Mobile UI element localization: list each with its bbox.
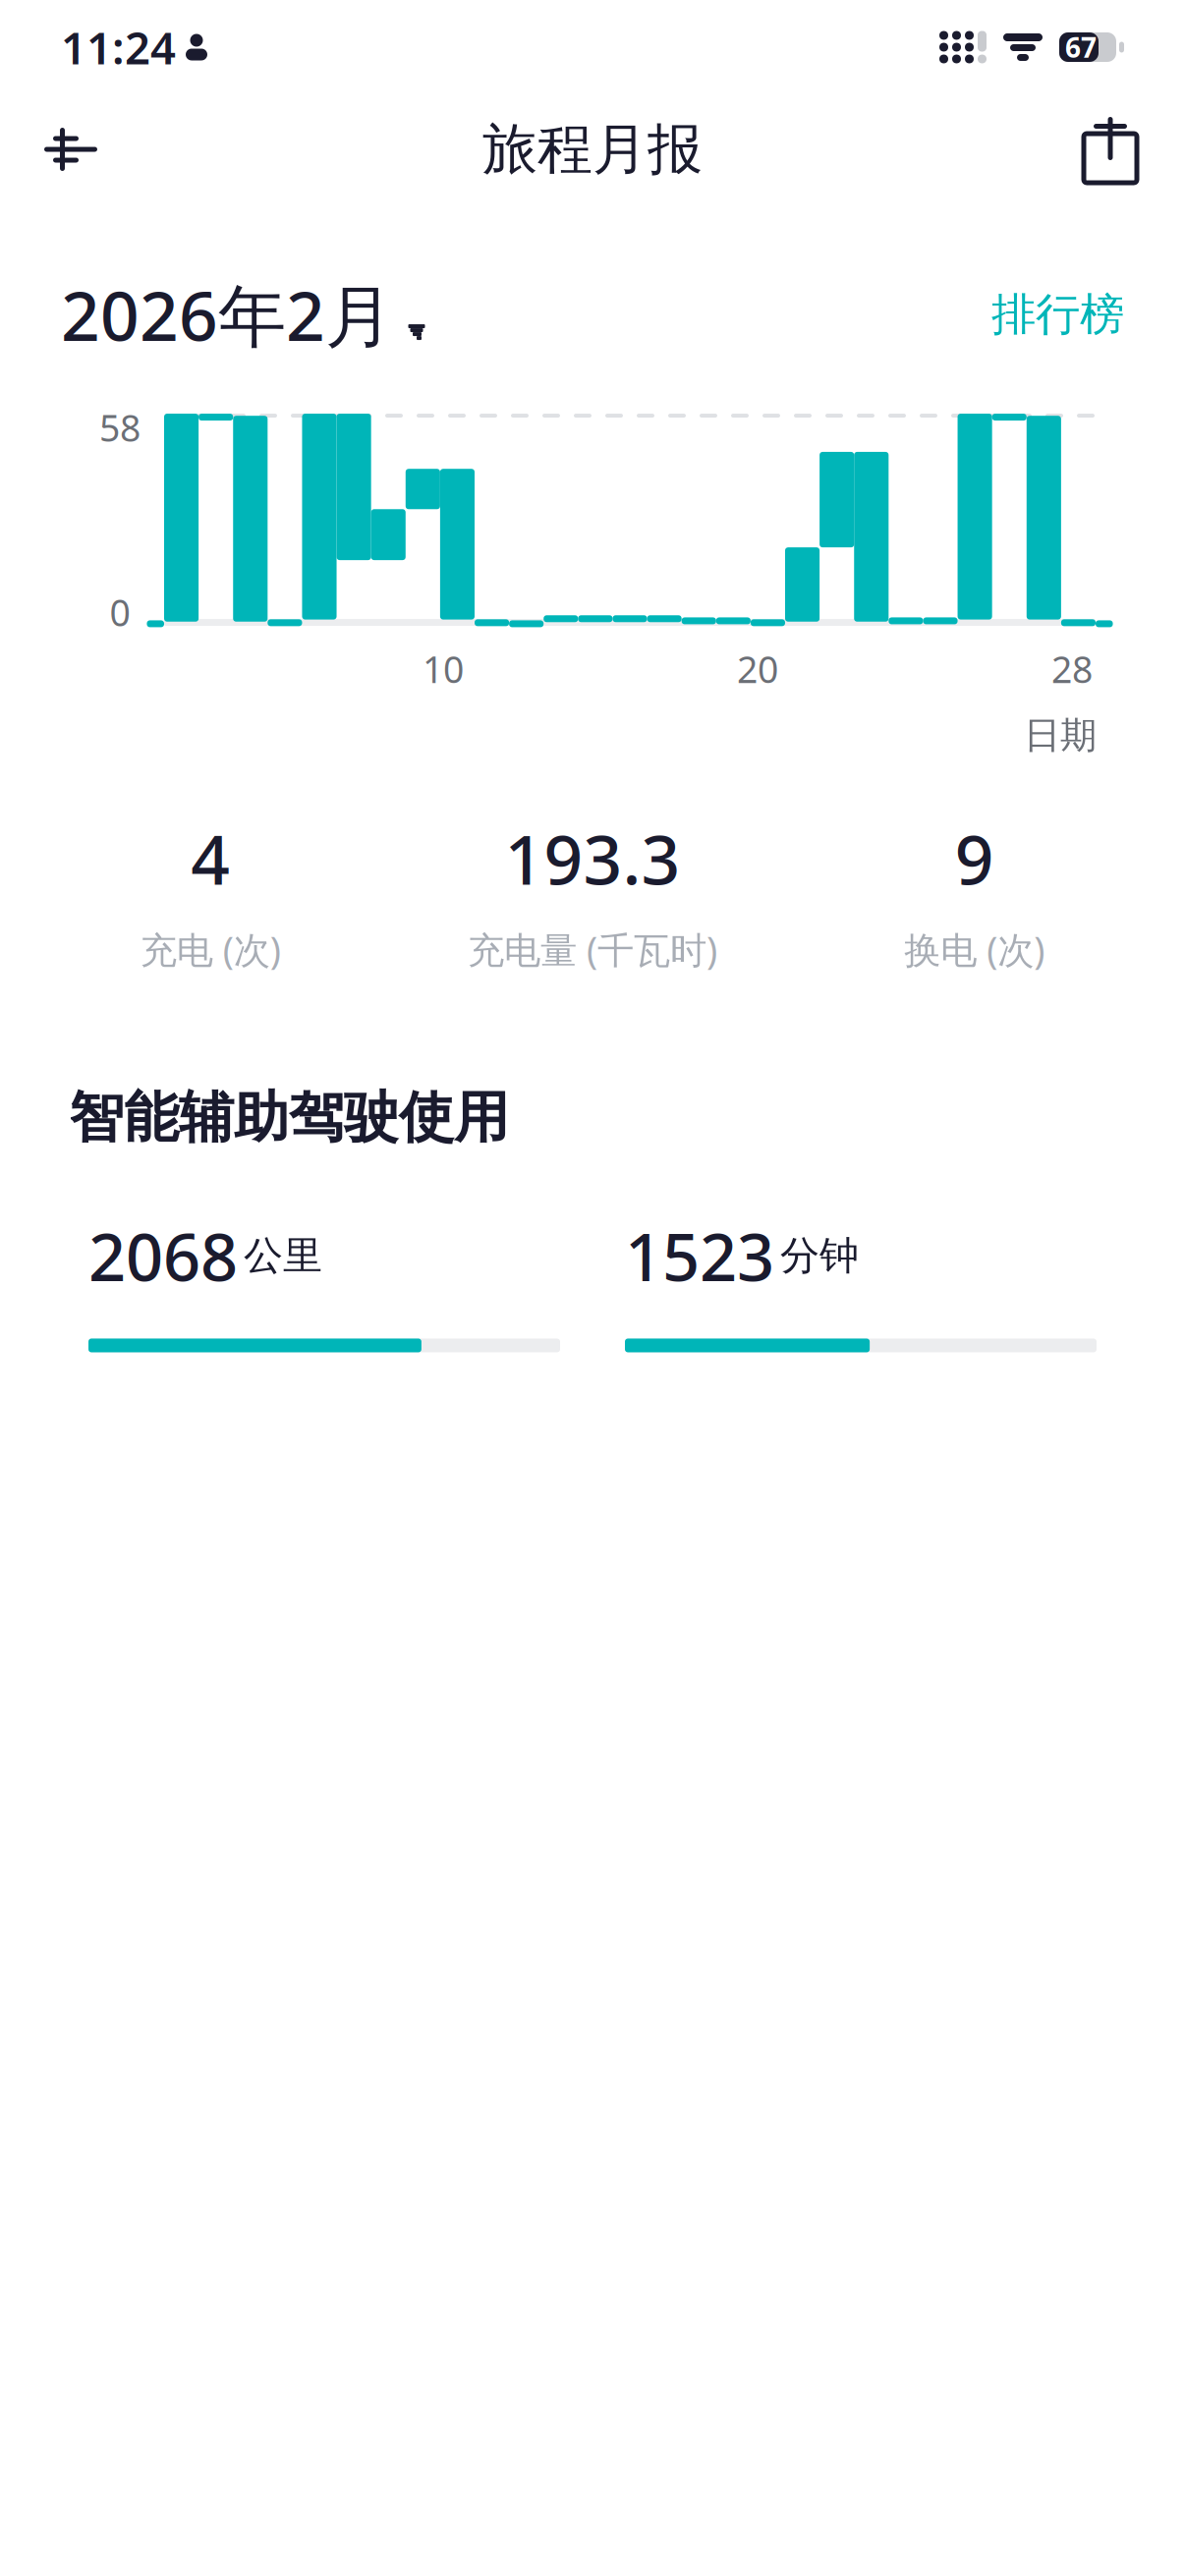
button[interactable]: 返回 [28,102,122,196]
staticText: 2068 [88,1212,238,1299]
staticText: 2026年2月 [61,269,393,360]
staticText: 28 [1051,645,1093,693]
staticText: 193.3 [505,813,680,903]
staticText: 充电 (次) [140,925,281,974]
button[interactable]: 分享 [1063,102,1157,196]
staticText: 智能辅助驾驶使用 [69,1084,509,1151]
staticText: 1523 [625,1212,774,1299]
staticText: 11:24 [61,18,176,77]
button[interactable]: 2026年2月 [61,269,423,360]
staticText: 充电量 (千瓦时) [468,925,717,974]
staticText: 9 [955,813,994,903]
staticText: 58 [99,403,141,452]
staticText: 分钟 [780,1232,859,1280]
staticText: 公里 [244,1232,322,1280]
staticText: 20 [737,645,778,693]
staticText: 0 [110,588,130,637]
button[interactable]: 排行榜 [991,287,1124,342]
staticText: 换电 (次) [904,925,1045,974]
staticText: 旅程月报 [482,116,703,183]
staticText: 4 [191,813,230,903]
staticText: 排行榜 [991,287,1124,342]
staticText: 日期 [1024,713,1097,758]
staticText: 67 [1065,29,1097,65]
staticText: 10 [423,645,464,693]
